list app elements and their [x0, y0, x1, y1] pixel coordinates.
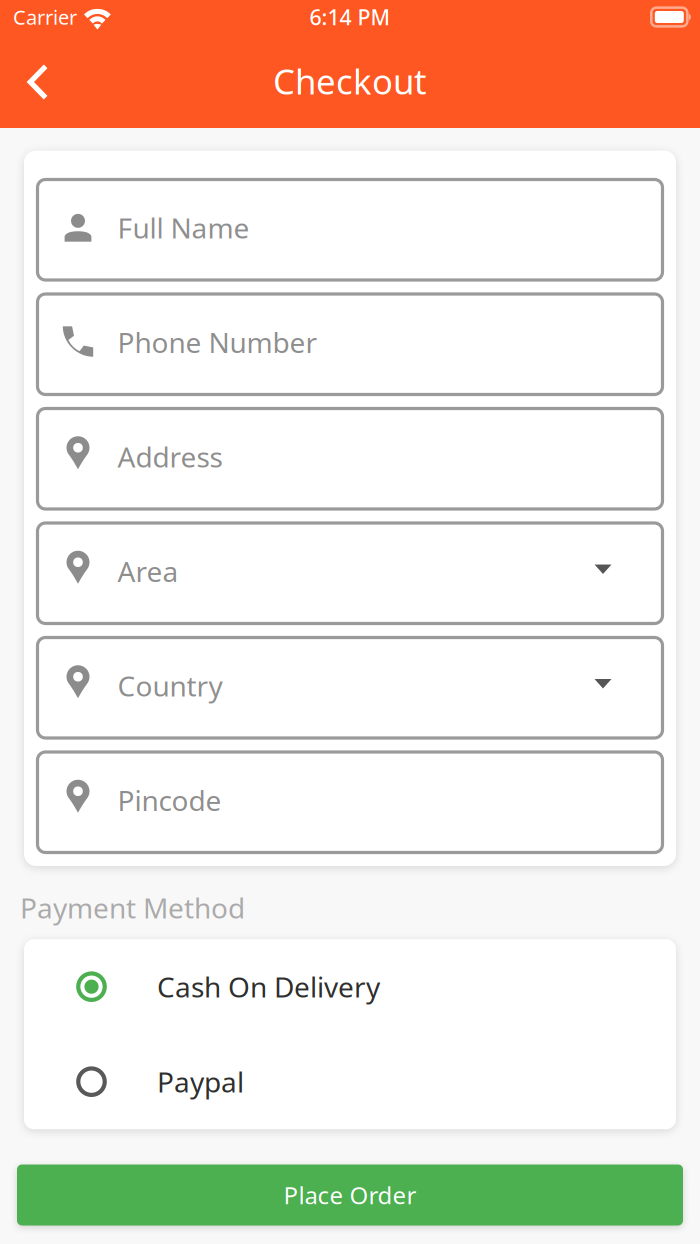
staticText: Cash On Delivery: [157, 968, 380, 1005]
staticText: Pincode: [117, 782, 221, 819]
staticText: Paypal: [157, 1063, 244, 1100]
staticText: Carrier: [13, 4, 77, 30]
staticText: Country: [117, 667, 222, 704]
button[interactable]: Place Order: [17, 1164, 683, 1225]
staticText: Address: [117, 438, 222, 475]
staticText: 6:14 PM: [309, 3, 390, 31]
staticText: Place Order: [283, 1179, 416, 1211]
button[interactable]: Paypal: [24, 1034, 676, 1129]
button[interactable]: Cash On Delivery: [24, 939, 676, 1034]
staticText: Phone Number: [117, 324, 317, 361]
staticText: Checkout: [273, 58, 427, 104]
staticText: Area: [117, 553, 178, 590]
button[interactable]: Back: [6, 51, 68, 113]
staticText: Full Name: [117, 209, 249, 246]
staticText: Payment Method: [20, 889, 245, 926]
